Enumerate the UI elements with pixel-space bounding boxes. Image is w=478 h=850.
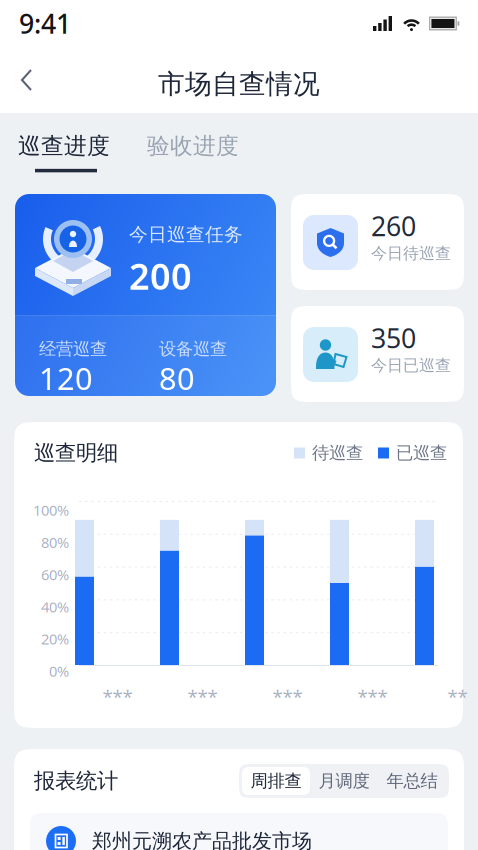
button[interactable]: 年总结 [378,767,446,795]
staticText: 20% [41,629,69,649]
button[interactable]: 验收进度 [147,113,243,194]
staticText: 120 [39,358,93,398]
button[interactable]: 260 [291,194,464,290]
staticText: 80% [41,533,69,552]
staticText: *** [102,684,132,709]
staticText: 40% [41,597,69,616]
staticText: 今日待巡查 [371,244,451,263]
staticText: 今日已巡查 [371,356,451,375]
staticText: 设备巡查 [159,338,227,360]
staticText: 报表统计 [34,768,118,794]
button[interactable]: 周排查 [242,767,310,795]
button[interactable]: 月调度 [310,767,378,795]
staticText: *** [357,684,387,709]
staticText: 经营巡查 [39,338,107,360]
staticText: 郑州元溯农产品批发市场 [92,829,312,850]
staticText: 100% [33,500,69,520]
staticText: 200 [129,252,192,300]
staticText: *** [272,684,302,709]
staticText: 巡查明细 [34,440,118,466]
staticText: 已巡查 [396,442,447,464]
staticText: 年总结 [386,770,437,792]
staticText: 周排查 [250,770,301,792]
staticText: 市场自查情况 [158,68,320,100]
staticText: 80 [159,358,195,398]
staticText: ** [447,684,467,709]
staticText: 验收进度 [147,132,239,160]
staticText: 今日巡查任务 [129,223,243,246]
staticText: 巡查进度 [18,132,110,160]
staticText: 260 [371,208,416,244]
staticText: 0% [49,661,69,681]
button[interactable]: 巡查进度 [18,113,114,194]
staticText: 月调度 [318,770,369,792]
staticText: 待巡查 [312,442,363,464]
staticText: *** [187,684,217,709]
staticText: 350 [371,320,416,356]
staticText: 9:41 [19,6,71,41]
staticText: 60% [41,565,69,584]
button[interactable]: 350 [291,306,464,402]
button[interactable]: Back [0,58,52,102]
